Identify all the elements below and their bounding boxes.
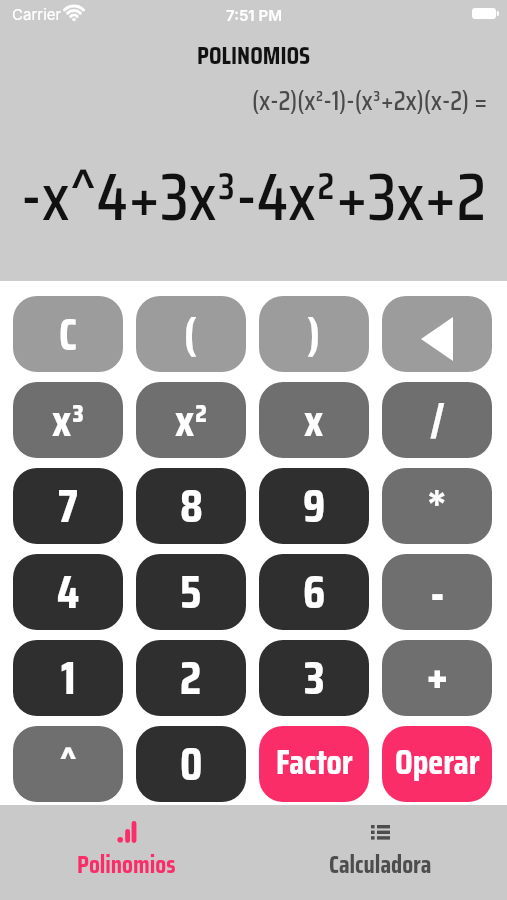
button[interactable]: Factor (259, 726, 369, 802)
button[interactable]: 7 (13, 468, 123, 544)
button[interactable]: * (382, 468, 492, 544)
staticText: - (430, 554, 445, 630)
staticText: 8 (180, 469, 203, 543)
staticText: ^ (60, 731, 77, 797)
button[interactable]: 3 (259, 640, 369, 716)
button[interactable]: 4 (13, 554, 123, 630)
staticText: (x-2)(x²-1)-(x³+2x)(x-2) = (252, 79, 488, 121)
button[interactable]: Polinomios (0, 821, 253, 884)
staticText: ( (184, 299, 198, 370)
staticText: + (426, 640, 449, 714)
button[interactable]: x (259, 382, 369, 458)
button[interactable]: 0 (136, 726, 246, 802)
staticText: 7 (58, 469, 78, 543)
staticText: 1 (61, 641, 76, 715)
staticText: x (304, 385, 324, 456)
staticText: Factor (276, 734, 353, 789)
staticText: x² (175, 385, 208, 456)
staticText: POLINOMIOS (197, 36, 311, 75)
button[interactable]: 2 (136, 640, 246, 716)
staticText: 3 (304, 641, 325, 715)
staticText: x³ (52, 385, 85, 456)
button[interactable]: + (382, 640, 492, 716)
staticText: 4 (57, 555, 80, 629)
button[interactable]: 1 (13, 640, 123, 716)
staticText: 6 (303, 555, 326, 629)
button[interactable]: 9 (259, 468, 369, 544)
button[interactable]: Operar (382, 726, 492, 802)
staticText: C (59, 299, 77, 370)
staticText: Polinomios (77, 845, 176, 884)
staticText: Carrier (12, 5, 62, 23)
button[interactable] (382, 296, 492, 372)
button[interactable]: x² (136, 382, 246, 458)
button[interactable]: 6 (259, 554, 369, 630)
button[interactable]: Calculadora (253, 821, 507, 884)
staticText: 0 (180, 727, 203, 801)
staticText: ) (307, 299, 321, 370)
staticText: -x^4+3x³-4x²+3x+2 (21, 144, 486, 249)
staticText: * (427, 469, 447, 544)
button[interactable]: / (382, 382, 492, 458)
button[interactable]: ) (259, 296, 369, 372)
button[interactable]: x³ (13, 382, 123, 458)
staticText: 7:51 PM (226, 6, 282, 24)
staticText: Calculadora (329, 845, 432, 884)
button[interactable]: - (382, 554, 492, 630)
staticText: Operar (395, 734, 480, 789)
staticText: 5 (180, 555, 202, 629)
staticText: 9 (303, 469, 326, 543)
button[interactable]: 8 (136, 468, 246, 544)
staticText: 2 (180, 641, 202, 715)
button[interactable]: ( (136, 296, 246, 372)
staticText: / (430, 385, 445, 456)
button[interactable]: ^ (13, 726, 123, 802)
button[interactable]: C (13, 296, 123, 372)
button[interactable]: 5 (136, 554, 246, 630)
